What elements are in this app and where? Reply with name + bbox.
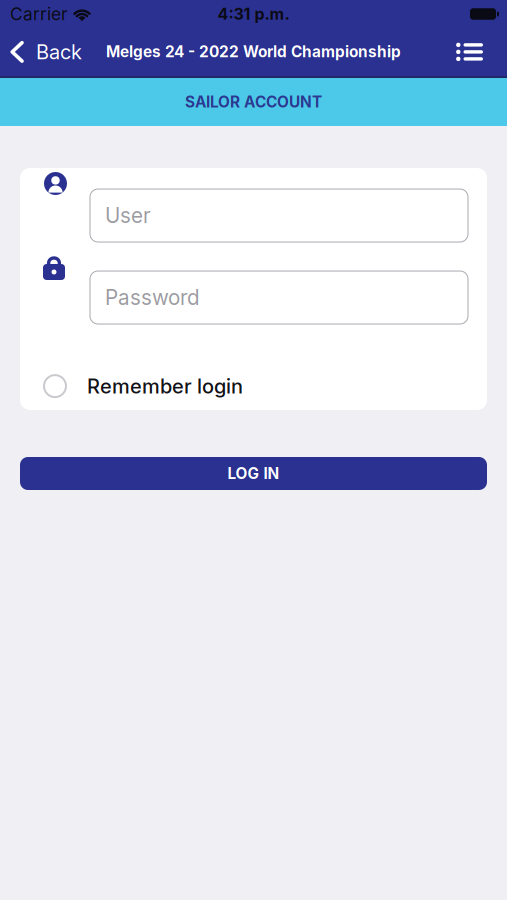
staticText: Remember login [87, 374, 243, 398]
staticText: Password [105, 285, 200, 310]
button[interactable]: Remember login [44, 374, 243, 398]
button[interactable]: LOG IN [20, 457, 487, 490]
staticText: User [105, 203, 151, 228]
staticText: Back [36, 40, 82, 64]
button[interactable]: Password [90, 271, 468, 324]
button[interactable]: Menu [456, 43, 507, 61]
staticText: 4:31 p.m. [217, 4, 289, 24]
staticText: Carrier [10, 3, 68, 24]
staticText: LOG IN [227, 464, 279, 483]
staticText: Melges 24 - 2022 World Championship [106, 42, 401, 61]
button[interactable]: User [90, 189, 468, 242]
button[interactable]: Back [0, 40, 82, 64]
staticText: SAILOR ACCOUNT [185, 93, 322, 111]
